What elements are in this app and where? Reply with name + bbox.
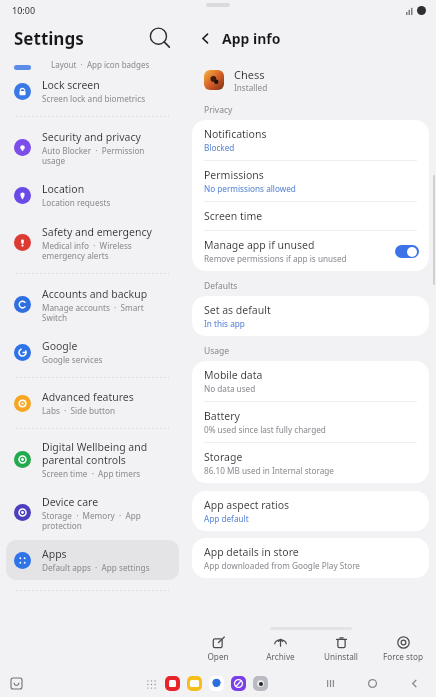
staticText: Advanced features — [42, 390, 134, 404]
button[interactable]: Recent apps panel — [8, 675, 24, 691]
staticText: Security and privacy — [42, 130, 141, 144]
staticText: Device care — [42, 495, 99, 509]
staticText: Accounts and backup — [42, 287, 148, 301]
staticText: Screen lock and biometrics — [42, 93, 146, 104]
staticText: Usage — [204, 345, 230, 357]
staticText: Digital Wellbeing and parental controls — [42, 440, 148, 467]
button[interactable]: Force stop — [374, 634, 432, 664]
staticText: App aspect ratios — [204, 498, 290, 512]
staticText: Battery — [204, 409, 240, 423]
staticText: Screen time — [204, 209, 263, 223]
staticText: Chess — [234, 67, 265, 82]
staticText: Apps — [42, 547, 67, 561]
staticText: No data used — [204, 383, 256, 394]
staticText: Set as default — [204, 303, 271, 317]
button[interactable]: App shortcut — [253, 676, 268, 691]
button[interactable]: All apps — [144, 677, 158, 691]
staticText: 10:00 — [12, 4, 36, 16]
staticText: Open — [207, 651, 229, 662]
staticText: Remove permissions if app is unused — [204, 253, 347, 264]
staticText: Force stop — [383, 651, 423, 662]
staticText: Google services — [42, 354, 103, 365]
button[interactable]: App details in store — [192, 538, 429, 578]
button[interactable]: Battery — [192, 402, 429, 442]
button[interactable]: App shortcut — [231, 676, 246, 691]
staticText: Layout · App icon badges — [51, 59, 150, 70]
staticText: Blocked — [204, 142, 235, 153]
staticText: Permissions — [204, 168, 264, 182]
staticText: 86.10 MB used in Internal storage — [204, 465, 334, 476]
staticText: Mobile data — [204, 368, 263, 382]
button[interactable]: Search — [147, 25, 173, 51]
button[interactable]: Recents — [322, 675, 338, 691]
button[interactable]: App shortcut — [209, 676, 224, 691]
staticText: Google — [42, 339, 78, 353]
staticText: App downloaded from Google Play Store — [204, 560, 360, 571]
staticText: 0% used since last fully charged — [204, 424, 326, 435]
button[interactable]: Open — [189, 634, 247, 664]
button[interactable]: App shortcut — [187, 676, 202, 691]
button[interactable]: Location — [6, 175, 179, 215]
button[interactable]: Accounts and backup — [6, 279, 179, 330]
button[interactable]: Notifications — [192, 120, 429, 160]
button[interactable]: Manage app if unused toggle — [395, 245, 419, 258]
staticText: Storage · Memory · App protection — [42, 510, 141, 531]
staticText: App default — [204, 513, 249, 524]
staticText: Storage — [204, 450, 243, 464]
button[interactable]: Digital Wellbeing and parental controls — [6, 434, 179, 485]
staticText: Uninstall — [324, 651, 358, 662]
button[interactable]: Archive — [251, 634, 309, 664]
button[interactable]: Lock screen — [6, 71, 179, 111]
button[interactable]: Security and privacy — [6, 122, 179, 173]
button[interactable]: Back — [406, 675, 422, 691]
button[interactable]: Back — [193, 26, 217, 50]
button[interactable]: Screen time — [192, 202, 429, 230]
staticText: In this app — [204, 318, 245, 329]
staticText: No permissions allowed — [204, 183, 296, 194]
staticText: Medical info · Wireless emergency alerts — [42, 240, 132, 261]
staticText: Settings — [14, 27, 84, 50]
staticText: Screen time · App timers — [42, 468, 141, 479]
button[interactable]: Device care — [6, 487, 179, 538]
button[interactable]: Manage app if unused — [192, 231, 429, 271]
button[interactable]: Home — [364, 675, 380, 691]
button[interactable]: Storage — [192, 443, 429, 483]
button[interactable]: App aspect ratios — [192, 491, 429, 531]
staticText: Installed — [234, 82, 268, 93]
staticText: Privacy — [204, 104, 233, 116]
button[interactable]: App shortcut — [165, 676, 180, 691]
staticText: Default apps · App settings — [42, 562, 150, 573]
button[interactable]: Safety and emergency — [6, 217, 179, 268]
staticText: Location requests — [42, 197, 111, 208]
staticText: Defaults — [204, 280, 238, 292]
button[interactable]: Google — [6, 332, 179, 372]
button[interactable]: Uninstall — [312, 634, 370, 664]
button[interactable]: Mobile data — [192, 361, 429, 401]
staticText: Manage app if unused — [204, 238, 315, 252]
staticText: Safety and emergency — [42, 225, 152, 239]
staticText: Location — [42, 182, 85, 196]
staticText: App details in store — [204, 545, 299, 559]
staticText: App info — [222, 29, 281, 48]
button[interactable]: Permissions — [192, 161, 429, 201]
button[interactable]: Set as default — [192, 296, 429, 336]
button[interactable]: Apps — [6, 540, 179, 580]
staticText: Labs · Side button — [42, 405, 115, 416]
staticText: Auto Blocker · Permission usage — [42, 145, 145, 166]
staticText: Manage accounts · Smart Switch — [42, 302, 144, 323]
staticText: Lock screen — [42, 78, 100, 92]
button[interactable]: Advanced features — [6, 383, 179, 423]
staticText: Archive — [266, 651, 295, 662]
staticText: Notifications — [204, 127, 267, 141]
